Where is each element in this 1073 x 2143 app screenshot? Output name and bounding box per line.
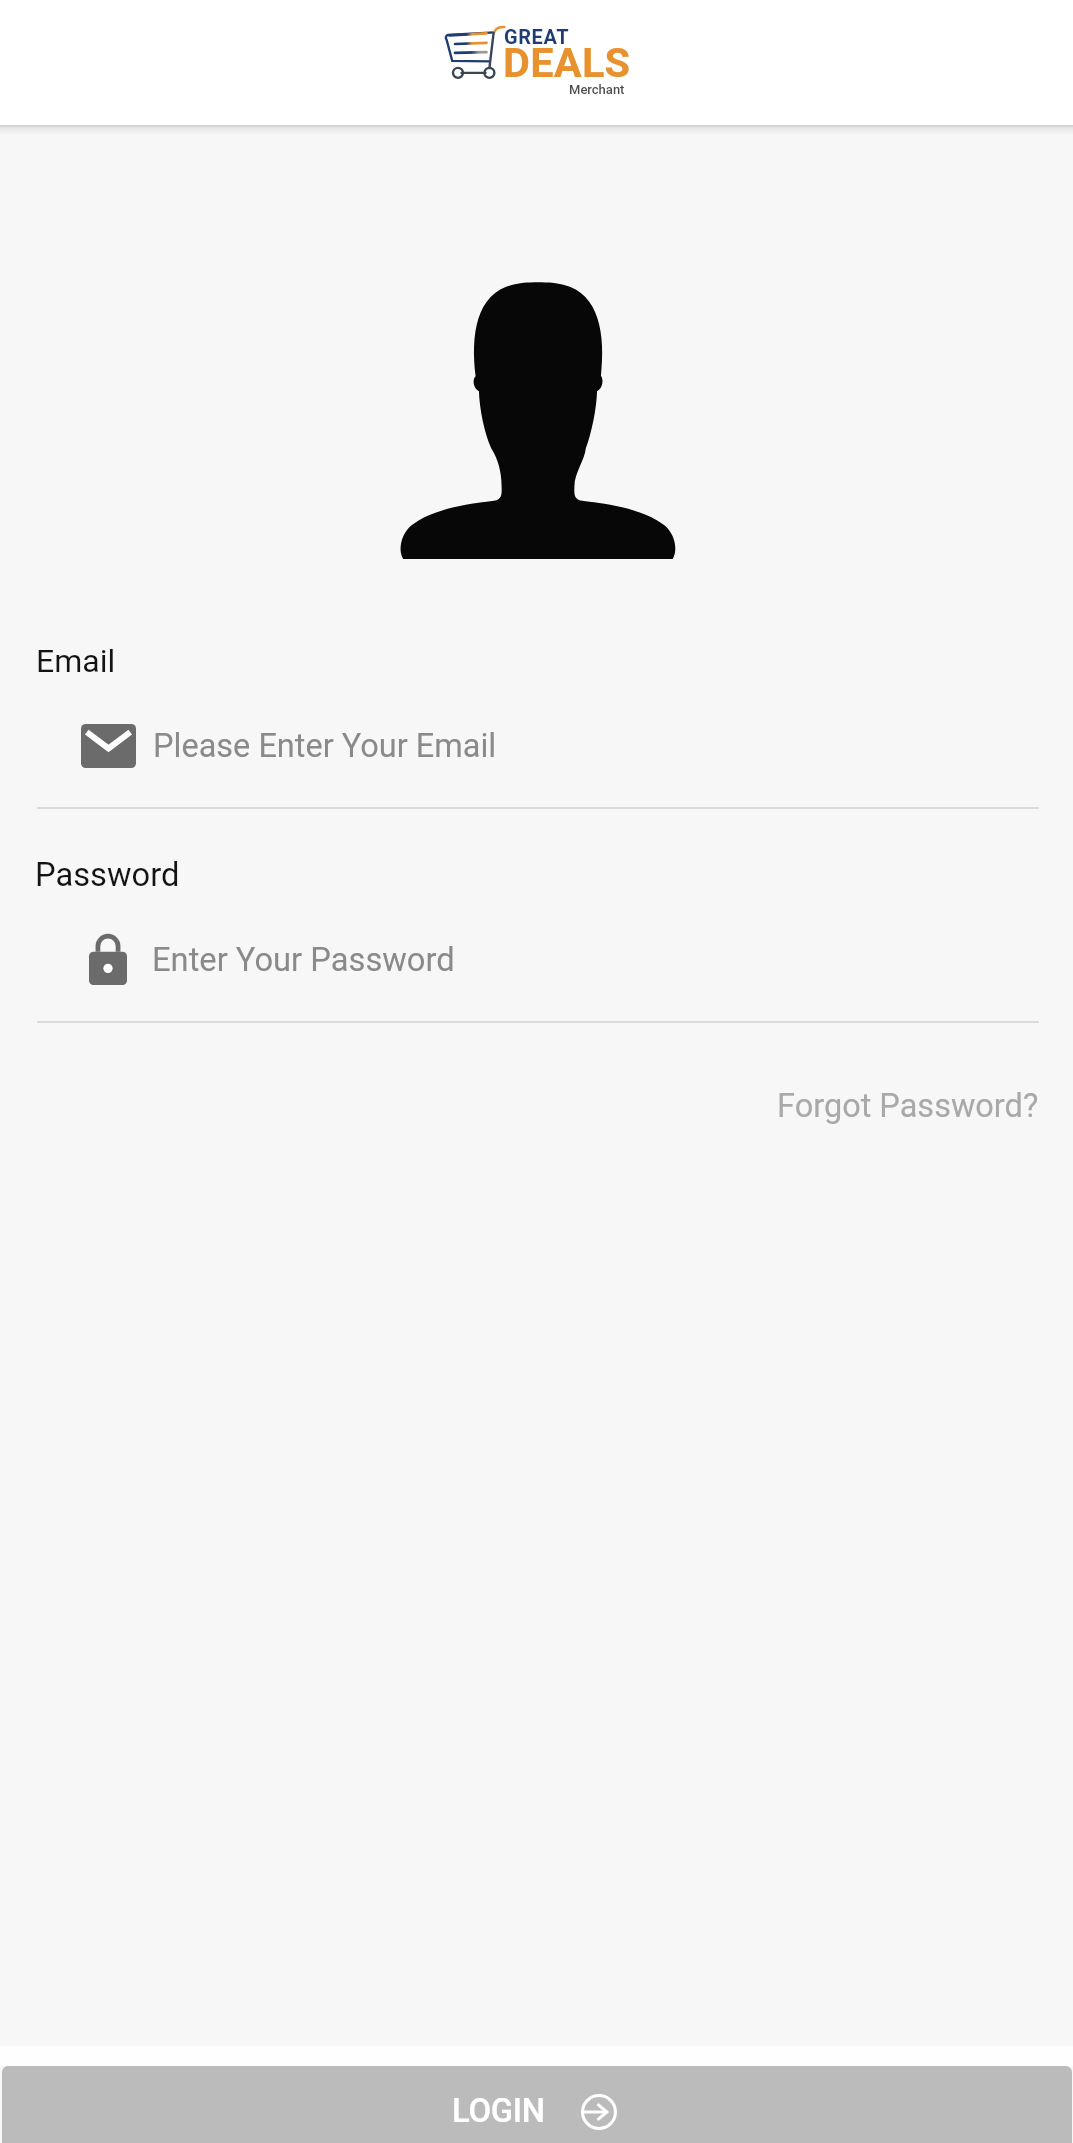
staticText: DEALS <box>503 38 631 87</box>
button[interactable] <box>37 700 1039 809</box>
button[interactable] <box>37 915 1039 1023</box>
button[interactable]: LOGIN <box>2 2066 1072 2143</box>
staticText: Please Enter Your Email <box>153 727 497 765</box>
button[interactable]: Forgot Password? <box>757 1079 1059 1133</box>
staticText: Merchant <box>569 82 625 97</box>
staticText: Email <box>36 642 116 680</box>
other: Login <box>581 2094 617 2130</box>
other: Email <box>81 724 136 768</box>
other: Password <box>89 933 127 985</box>
staticText: Forgot Password? <box>777 1087 1039 1125</box>
staticText: Password <box>35 856 180 894</box>
staticText: Enter Your Password <box>152 941 455 979</box>
staticText: LOGIN <box>452 2092 545 2130</box>
staticText: GREAT <box>504 25 570 48</box>
